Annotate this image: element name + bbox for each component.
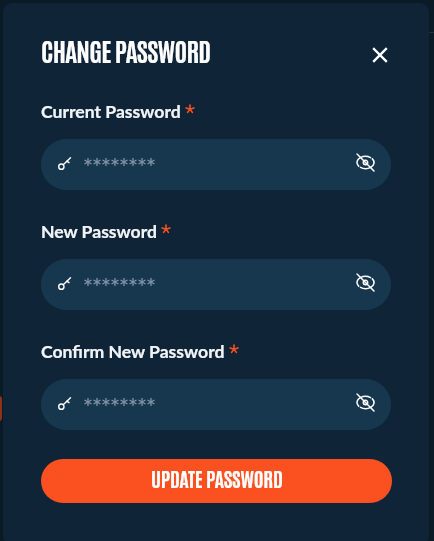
button[interactable]: Show password — [41, 259, 391, 310]
staticText: CHANGE PASSWORD — [41, 33, 211, 67]
staticText: Confirm New Password — [41, 341, 225, 362]
staticText: New Password — [41, 221, 157, 242]
button[interactable]: Show password — [41, 379, 391, 430]
staticText: Current Password — [41, 101, 181, 122]
button[interactable]: Show password — [345, 382, 385, 422]
button[interactable]: Show password — [41, 139, 391, 190]
staticText: UPDATE PASSWORD — [151, 465, 283, 491]
button[interactable]: Close dialog — [363, 38, 397, 72]
button[interactable]: Show password — [345, 262, 385, 302]
button[interactable]: Show password — [345, 142, 385, 182]
button[interactable]: UPDATE PASSWORD — [41, 459, 392, 503]
